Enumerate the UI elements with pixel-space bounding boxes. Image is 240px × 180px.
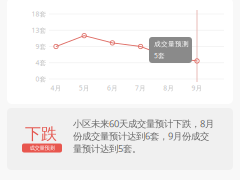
staticText: 0套 xyxy=(35,75,46,83)
staticText: 6月 xyxy=(107,84,118,92)
staticText: 9月 xyxy=(191,84,202,92)
staticText: 7月 xyxy=(135,84,146,92)
staticText: 下跌 xyxy=(25,124,57,144)
staticText: 成交量预测 xyxy=(29,145,54,151)
staticText: 5套 xyxy=(154,51,165,60)
staticText: 9套 xyxy=(35,42,46,51)
staticText: 小区未来60天成交量预计下跌，8月份成交量预计达到6套，9月份成交量预计达到5套… xyxy=(73,117,214,155)
staticText: 4月 xyxy=(50,84,61,92)
staticText: 4套 xyxy=(35,58,46,67)
staticText: 13套 xyxy=(31,26,46,35)
staticText: 成交量预测 xyxy=(154,40,189,48)
staticText: 18套 xyxy=(31,10,46,18)
staticText: 8月 xyxy=(163,84,174,92)
staticText: 5月 xyxy=(79,84,90,92)
